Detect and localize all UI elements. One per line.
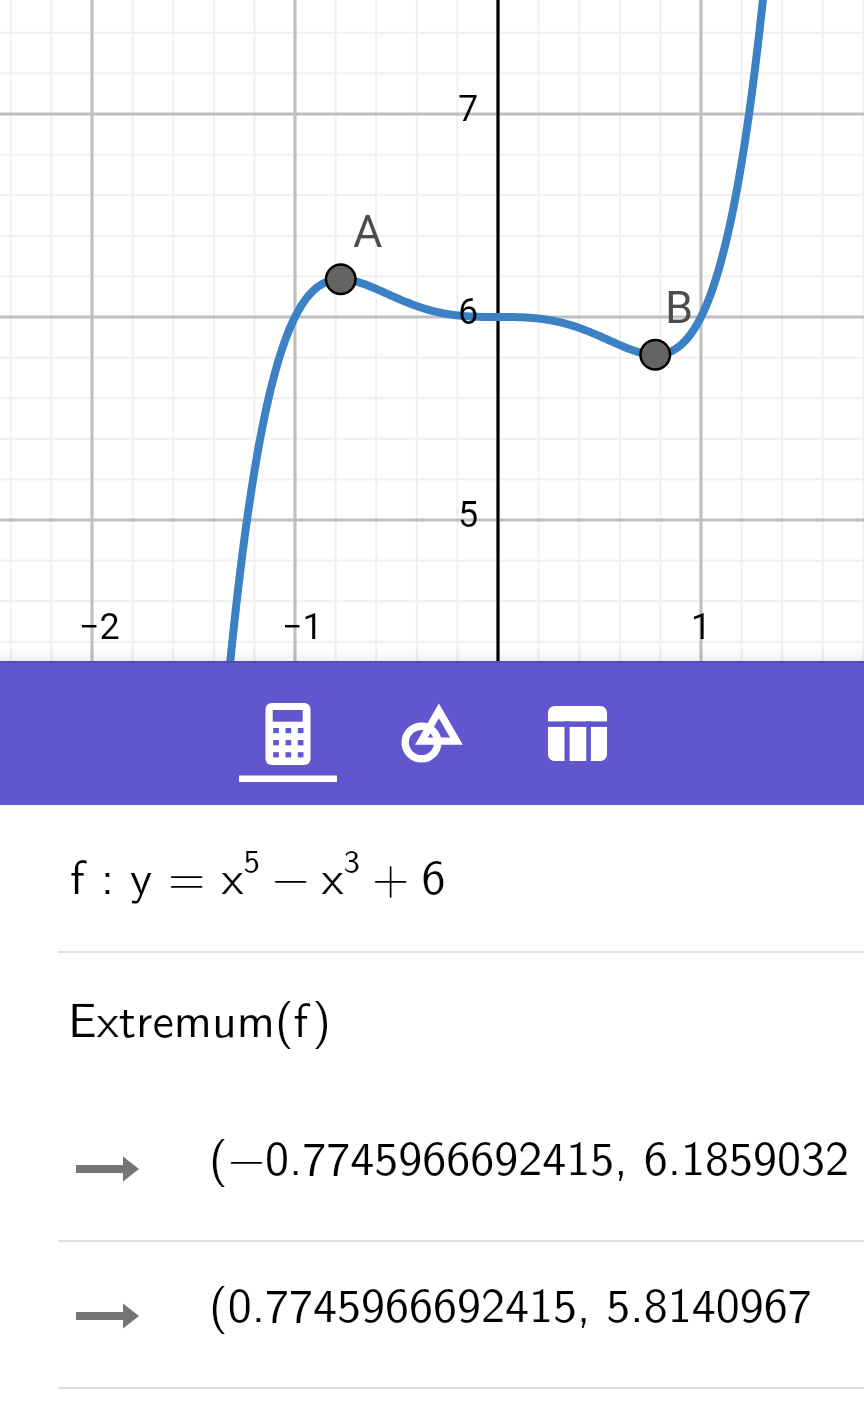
staticText: (−0.7745966692415, 6.1859032 <box>209 1120 850 1190</box>
button[interactable]: f : y = x5 − x3 + 6 <box>0 805 864 951</box>
staticText: 7 <box>458 88 479 130</box>
staticText: (0.7745966692415, 5.8140967 <box>209 1267 812 1337</box>
staticText: −2 <box>79 606 120 648</box>
staticText: Extremum(f) <box>68 982 331 1052</box>
button[interactable]: Table <box>530 661 626 805</box>
button[interactable]: Geometry <box>384 661 480 805</box>
staticText: 1 <box>691 606 712 648</box>
button[interactable]: (0.7745966692415, 5.8140967 <box>0 1240 864 1387</box>
button[interactable]: Extremum(f) <box>0 951 864 1093</box>
button[interactable]: Calculator <box>240 661 336 805</box>
staticText: 6 <box>458 291 479 333</box>
button[interactable]: (−0.7745966692415, 6.1859032 <box>0 1093 864 1240</box>
staticText: −1 <box>282 606 323 648</box>
staticText: 5 <box>458 494 479 536</box>
staticText: B <box>665 281 694 334</box>
staticText: A <box>353 205 383 258</box>
staticText: f : y = x5 − x3 + 6 <box>70 835 446 909</box>
